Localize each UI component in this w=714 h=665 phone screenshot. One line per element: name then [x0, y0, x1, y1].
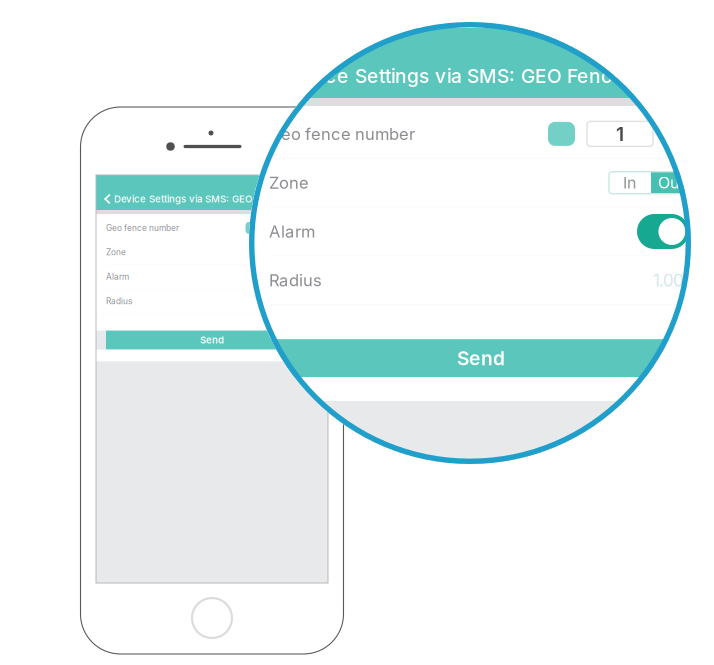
- staticText: Zone: [106, 247, 126, 257]
- staticText: Send: [469, 391, 493, 403]
- staticText: Radius: [106, 296, 132, 306]
- button[interactable]: Device Settings via SMS: GEO Fence: [96, 188, 328, 210]
- button[interactable]: Send: [375, 388, 587, 407]
- staticText: 1: [279, 222, 283, 234]
- button[interactable]: Send: [106, 331, 318, 350]
- button[interactable]: Radius: [365, 346, 597, 370]
- staticText: Alarm: [106, 272, 129, 282]
- staticText: Device Settings via SMS: GEO Fence: [114, 193, 284, 205]
- staticText: Send: [200, 334, 224, 346]
- staticText: Geo fence number: [106, 223, 179, 233]
- button[interactable]: Geo fence number: [96, 216, 328, 240]
- button[interactable]: Alarm: [96, 265, 328, 289]
- button[interactable]: Zone: [96, 240, 328, 264]
- button[interactable]: Radius: [96, 289, 328, 313]
- button[interactable]: Alarm: [365, 322, 597, 346]
